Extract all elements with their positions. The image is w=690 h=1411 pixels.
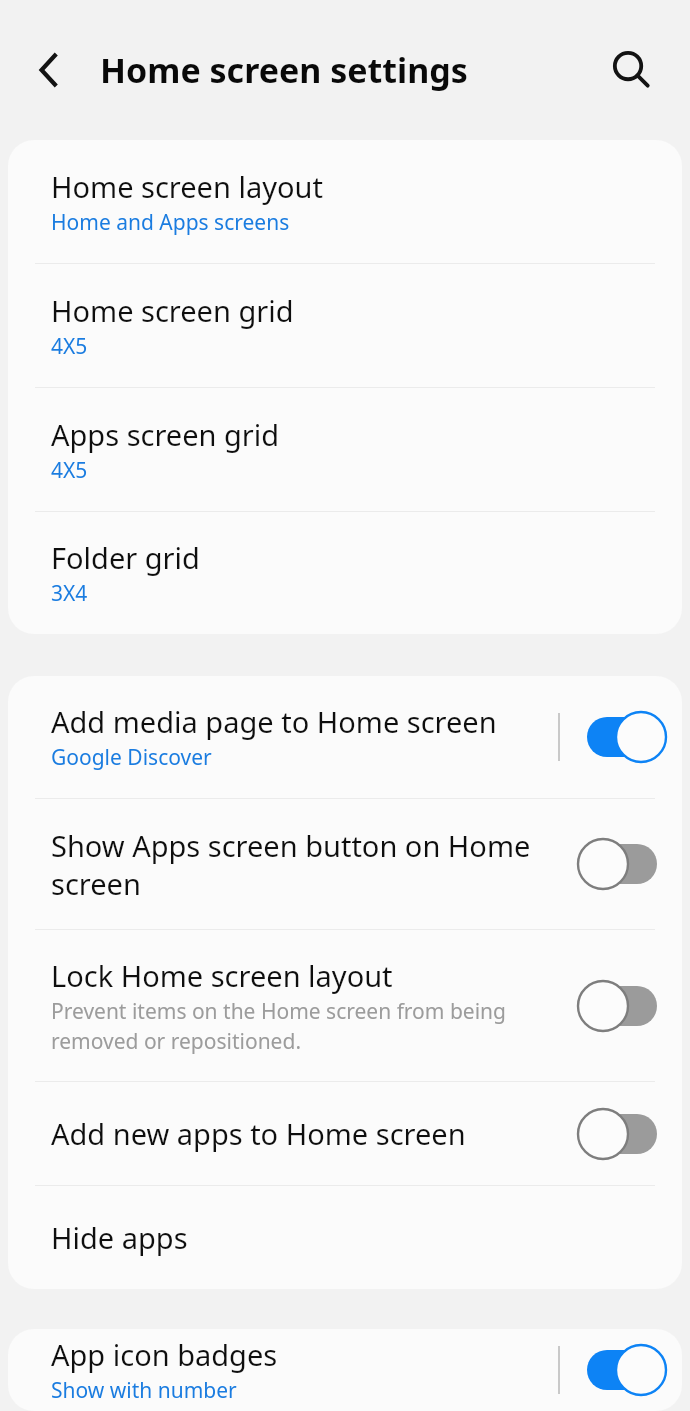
button[interactable]: Search	[604, 42, 660, 98]
button[interactable]: Switch off	[576, 974, 668, 1038]
button[interactable]: Lock Home screen layout	[8, 930, 682, 1081]
staticText: Home screen settings	[100, 47, 468, 93]
staticText: 3X4	[51, 579, 88, 608]
button[interactable]: Switch off	[576, 1102, 668, 1166]
staticText: Hide apps	[51, 1218, 188, 1257]
staticText: Show Apps screen button on Home screen	[51, 826, 566, 903]
staticText: Add new apps to Home screen	[51, 1114, 466, 1153]
staticText: Prevent items on the Home screen from be…	[51, 997, 566, 1055]
staticText: Show with number	[51, 1376, 237, 1405]
staticText: 4X5	[51, 456, 88, 485]
staticText: Google Discover	[51, 743, 212, 772]
button[interactable]: Home screen grid	[8, 264, 682, 387]
staticText: Apps screen grid	[51, 415, 280, 454]
button[interactable]: Switch off	[576, 832, 668, 896]
button[interactable]: Add media page to Home screen	[8, 676, 682, 798]
staticText: Home screen layout	[51, 167, 323, 206]
button[interactable]: Apps screen grid	[8, 388, 682, 511]
button[interactable]: Show Apps screen button on Home screen	[8, 799, 682, 929]
staticText: Home screen grid	[51, 291, 294, 330]
button[interactable]: Switch on	[576, 705, 668, 769]
staticText: Folder grid	[51, 538, 200, 577]
button[interactable]: Home screen layout	[8, 140, 682, 263]
staticText: Home and Apps screens	[51, 208, 290, 237]
staticText: App icon badges	[51, 1335, 278, 1374]
staticText: Add media page to Home screen	[51, 702, 497, 741]
button[interactable]: App icon badges	[8, 1329, 682, 1411]
button[interactable]: Back	[22, 44, 74, 96]
staticText: 4X5	[51, 332, 88, 361]
button[interactable]: Switch on	[576, 1338, 668, 1402]
button[interactable]: Folder grid	[8, 512, 682, 634]
button[interactable]: Hide apps	[8, 1186, 682, 1289]
button[interactable]: Add new apps to Home screen	[8, 1082, 682, 1185]
staticText: Lock Home screen layout	[51, 956, 393, 995]
